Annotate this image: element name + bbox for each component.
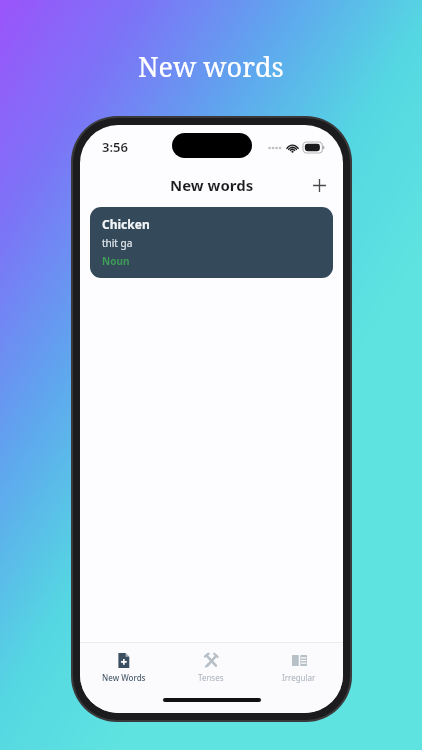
staticText: New words [170, 175, 254, 195]
staticText: Tenses [198, 672, 224, 683]
staticText: New Words [102, 672, 146, 683]
button[interactable]: Tenses [167, 643, 255, 691]
staticText: Irregular [282, 672, 316, 683]
button[interactable]: New Words [80, 643, 167, 691]
button[interactable]: Add new word [305, 171, 333, 199]
button[interactable]: Irregular [255, 643, 343, 691]
button[interactable]: Chicken [90, 207, 333, 278]
staticText: Chicken [102, 216, 150, 232]
staticText: thit ga [102, 236, 133, 250]
staticText: New words [138, 48, 284, 85]
staticText: 3:56 [102, 138, 128, 156]
staticText: Noun [102, 254, 130, 268]
